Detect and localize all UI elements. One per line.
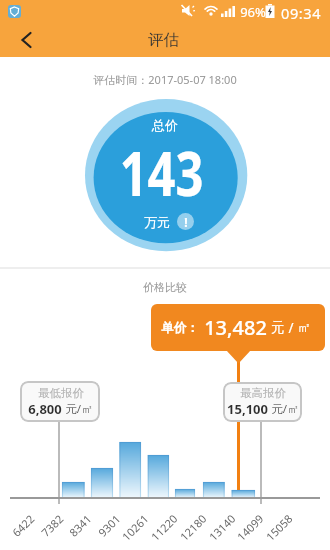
staticText: 15,100: [227, 400, 268, 418]
staticText: 单价：: [161, 320, 199, 336]
staticText: 评估时间：2017-05-07 18:00: [93, 72, 237, 87]
button[interactable]: 最高报价: [223, 382, 302, 422]
staticText: 元/㎡: [62, 401, 93, 417]
staticText: 最高报价: [240, 386, 286, 400]
staticText: 15058: [262, 511, 296, 544]
staticText: 13140: [205, 511, 239, 544]
staticText: 万元: [144, 214, 170, 230]
staticText: 元/㎡: [268, 401, 299, 417]
staticText: 评估: [148, 30, 179, 50]
staticText: 12180: [176, 511, 210, 544]
button[interactable]: 单价：: [151, 304, 325, 351]
staticText: 最低报价: [38, 386, 84, 400]
staticText: 14099: [233, 511, 267, 544]
staticText: 6,800: [28, 400, 62, 418]
staticText: 7382: [37, 511, 66, 540]
staticText: 13,482: [204, 314, 267, 341]
button[interactable]: !: [177, 213, 194, 230]
staticText: 11220: [147, 511, 181, 544]
staticText: 10261: [118, 511, 152, 544]
staticText: /: [288, 319, 294, 337]
staticText: ㎡: [297, 319, 311, 336]
button[interactable]: [6, 22, 46, 57]
staticText: !: [184, 214, 188, 230]
staticText: 价格比较: [143, 280, 187, 294]
staticText: 96%: [240, 3, 266, 21]
staticText: 6422: [8, 511, 37, 540]
staticText: 09:34: [281, 3, 322, 23]
staticText: 元: [271, 319, 285, 336]
button[interactable]: 最低报价: [20, 381, 100, 422]
staticText: 143: [119, 131, 203, 214]
staticText: 9301: [94, 511, 123, 540]
staticText: 总价: [152, 117, 178, 133]
staticText: 8341: [65, 511, 94, 540]
